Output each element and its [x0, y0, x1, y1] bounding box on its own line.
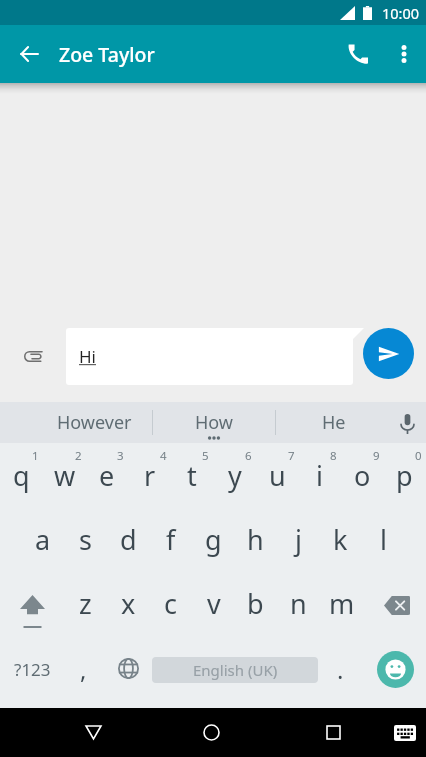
- button[interactable]: t: [170, 443, 213, 507]
- button[interactable]: f: [149, 507, 192, 571]
- button[interactable]: Voice input: [388, 402, 426, 443]
- button[interactable]: w: [43, 443, 86, 507]
- button[interactable]: s: [64, 507, 107, 571]
- staticText: 0: [415, 448, 422, 464]
- button[interactable]: Back: [70, 709, 117, 756]
- staticText: 9: [373, 448, 380, 464]
- button[interactable]: Home: [188, 709, 235, 756]
- staticText: h: [247, 521, 264, 558]
- button[interactable]: y: [213, 443, 256, 507]
- button[interactable]: Send: [363, 328, 414, 379]
- staticText: l: [380, 521, 387, 558]
- button[interactable]: Call: [335, 32, 379, 76]
- staticText: a: [35, 521, 51, 558]
- button[interactable]: m: [320, 571, 363, 635]
- button[interactable]: Recent apps: [310, 709, 357, 756]
- button[interactable]: More options: [382, 32, 426, 76]
- staticText: t: [187, 457, 197, 494]
- staticText: .: [337, 653, 344, 686]
- button[interactable]: How: [154, 402, 274, 443]
- button[interactable]: j: [277, 507, 320, 571]
- button[interactable]: Change language: [106, 635, 150, 699]
- button[interactable]: Attach: [12, 334, 56, 378]
- staticText: ,: [80, 653, 87, 686]
- button[interactable]: r: [128, 443, 171, 507]
- button[interactable]: u: [256, 443, 299, 507]
- staticText: b: [247, 585, 264, 622]
- staticText: 6: [245, 448, 252, 464]
- button[interactable]: Backspace: [362, 571, 426, 635]
- staticText: x: [121, 585, 136, 622]
- staticText: w: [54, 457, 76, 494]
- button[interactable]: ?123: [0, 635, 64, 699]
- button[interactable]: n: [277, 571, 320, 635]
- staticText: g: [205, 521, 222, 558]
- button[interactable]: ,: [64, 635, 106, 699]
- staticText: r: [144, 457, 156, 494]
- button[interactable]: d: [107, 507, 150, 571]
- button[interactable]: b: [234, 571, 277, 635]
- staticText: v: [207, 585, 221, 622]
- button[interactable]: Hi: [66, 328, 364, 385]
- staticText: n: [290, 585, 307, 622]
- staticText: k: [333, 521, 348, 558]
- button[interactable]: e: [85, 443, 128, 507]
- staticText: English (UK): [193, 660, 278, 680]
- staticText: How: [195, 410, 234, 435]
- staticText: 5: [202, 448, 209, 464]
- staticText: o: [354, 457, 371, 494]
- button[interactable]: g: [192, 507, 235, 571]
- button[interactable]: o: [341, 443, 384, 507]
- staticText: f: [166, 521, 176, 558]
- staticText: p: [396, 457, 413, 494]
- button[interactable]: He: [274, 402, 394, 443]
- button[interactable]: c: [149, 571, 192, 635]
- staticText: 10:00: [382, 3, 420, 23]
- staticText: e: [99, 457, 115, 494]
- button[interactable]: x: [107, 571, 150, 635]
- staticText: 4: [160, 448, 167, 464]
- staticText: s: [79, 521, 92, 558]
- button[interactable]: z: [64, 571, 107, 635]
- staticText: However: [57, 410, 132, 435]
- staticText: 3: [117, 448, 124, 464]
- staticText: c: [164, 585, 177, 622]
- staticText: d: [120, 521, 137, 558]
- staticText: He: [322, 410, 346, 435]
- staticText: 2: [75, 448, 82, 464]
- staticText: 8: [330, 448, 337, 464]
- button[interactable]: k: [319, 507, 362, 571]
- button[interactable]: p: [383, 443, 426, 507]
- button[interactable]: Keyboard: [383, 711, 426, 755]
- staticText: q: [13, 457, 30, 494]
- button[interactable]: English (UK): [152, 657, 318, 683]
- button[interactable]: h: [234, 507, 277, 571]
- staticText: m: [329, 585, 355, 622]
- staticText: ?123: [14, 658, 51, 681]
- button[interactable]: Shift: [0, 571, 64, 635]
- staticText: u: [269, 457, 286, 494]
- button[interactable]: l: [362, 507, 405, 571]
- button[interactable]: a: [21, 507, 64, 571]
- staticText: Hi: [79, 345, 96, 368]
- button[interactable]: i: [298, 443, 341, 507]
- button[interactable]: q: [0, 443, 43, 507]
- staticText: y: [228, 457, 242, 494]
- button[interactable]: However: [34, 402, 154, 443]
- staticText: Zoe Taylor: [59, 41, 155, 68]
- staticText: 7: [288, 448, 295, 464]
- staticText: i: [316, 457, 323, 494]
- staticText: j: [295, 521, 302, 558]
- button[interactable]: Back: [9, 34, 49, 74]
- staticText: 1: [32, 448, 39, 464]
- button[interactable]: Emoji: [362, 635, 426, 699]
- staticText: z: [79, 585, 92, 622]
- button[interactable]: .: [320, 635, 362, 699]
- button[interactable]: v: [192, 571, 235, 635]
